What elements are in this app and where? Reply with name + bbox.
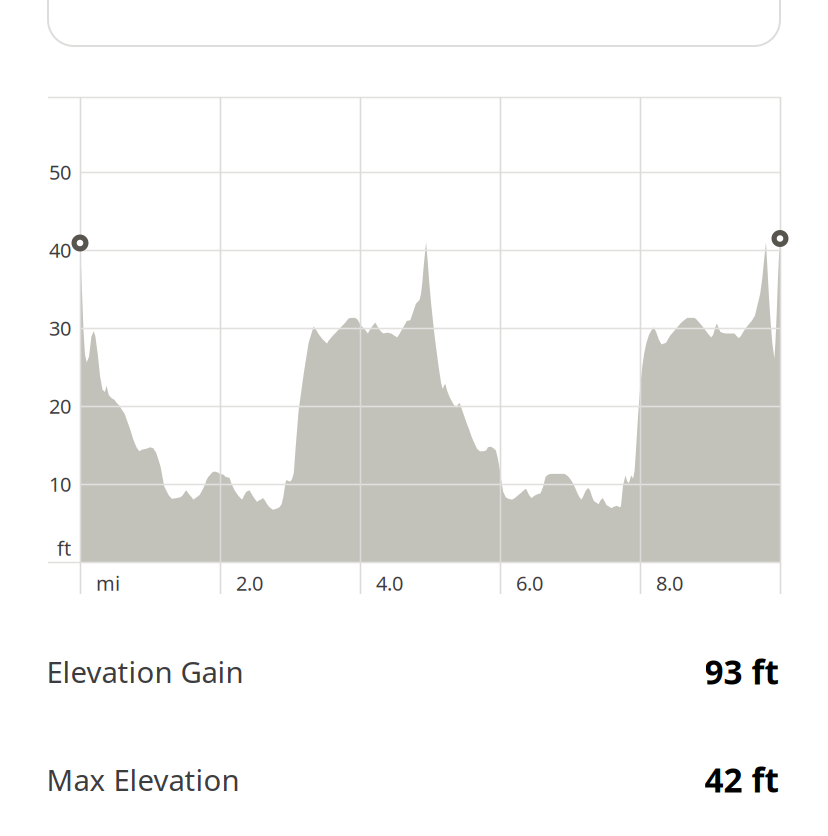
staticText: 93 ft bbox=[704, 649, 778, 694]
staticText: mi bbox=[96, 570, 120, 596]
staticText: 10 bbox=[49, 471, 71, 497]
staticText: 30 bbox=[49, 315, 71, 341]
staticText: Max Elevation bbox=[46, 760, 239, 799]
staticText: 50 bbox=[49, 159, 71, 185]
staticText: 4.0 bbox=[376, 570, 403, 596]
staticText: 40 bbox=[49, 237, 71, 263]
staticText: 6.0 bbox=[516, 570, 543, 596]
staticText: 20 bbox=[49, 393, 71, 419]
staticText: ft bbox=[57, 535, 71, 561]
staticText: 8.0 bbox=[656, 570, 683, 596]
staticText: 42 ft bbox=[704, 757, 778, 802]
staticText: 2.0 bbox=[236, 570, 263, 596]
staticText: Elevation Gain bbox=[46, 652, 243, 691]
button[interactable]: Max Elevation bbox=[46, 756, 778, 802]
button[interactable]: Elevation Gain bbox=[46, 648, 778, 694]
